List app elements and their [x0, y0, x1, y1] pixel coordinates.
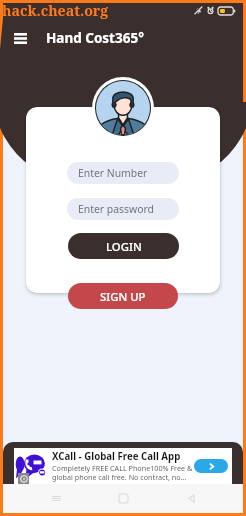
button[interactable]: Enter Number	[67, 162, 179, 184]
button[interactable]: SIGN UP	[68, 283, 178, 309]
staticText: Enter Number	[78, 166, 148, 180]
button[interactable]: Enter password	[67, 198, 179, 220]
button[interactable]: XCall - Global Free Call App	[14, 448, 232, 484]
button[interactable]: Open ad	[194, 459, 228, 473]
staticText: Completely FREE CALL Phone100% Free & gl…	[52, 463, 193, 482]
staticText: Enter password	[78, 202, 154, 216]
button[interactable]: Menu	[7, 25, 33, 51]
staticText: SIGN UP	[100, 289, 146, 304]
button[interactable]: Ad choices	[18, 473, 29, 484]
staticText: hack.cheat.org	[2, 1, 109, 20]
staticText: LOGIN	[106, 239, 142, 254]
button[interactable]: Home	[108, 484, 138, 513]
button[interactable]: Recents	[41, 484, 71, 513]
staticText: XCall - Global Free Call App	[52, 450, 181, 463]
button[interactable]: Back	[176, 484, 206, 513]
button[interactable]: LOGIN	[68, 233, 179, 259]
staticText: Hand Cost365°	[46, 29, 144, 47]
